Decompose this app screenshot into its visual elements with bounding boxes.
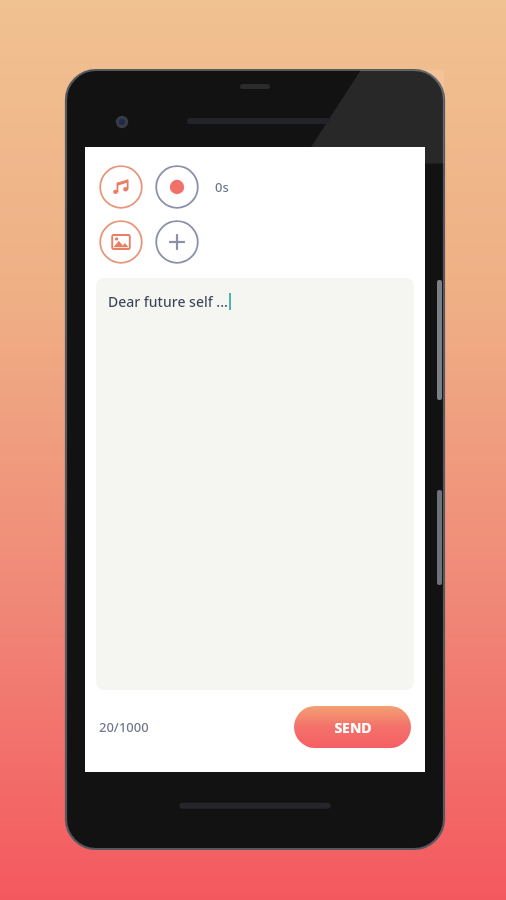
button[interactable]: Add attachment [155,220,199,264]
staticText: SEND [334,718,372,737]
button[interactable]: SEND [294,706,411,748]
staticText: 0s [215,178,229,196]
button[interactable]: Record [155,165,199,209]
button[interactable]: Add audio [99,165,143,209]
button[interactable]: Dear future self ... [96,278,414,690]
staticText: Dear future self ... [108,292,228,311]
staticText: 20/1000 [99,718,149,736]
button[interactable]: Add image [99,220,143,264]
